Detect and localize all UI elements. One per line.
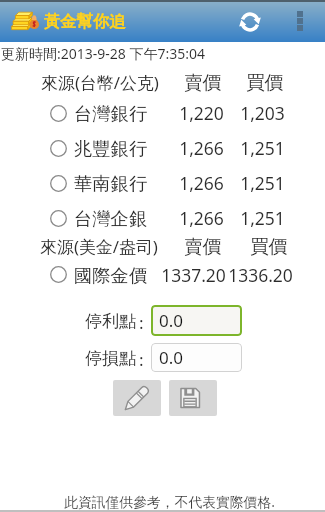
staticText: 1336.20 (228, 263, 293, 287)
button[interactable] (0, 131, 325, 166)
staticText: 1,266 (179, 171, 224, 195)
button[interactable]: Save (169, 380, 217, 416)
button[interactable] (0, 201, 325, 236)
staticText: 停損點 (85, 348, 137, 370)
staticText: 更新時間:2013-9-28 下午7:35:04 (1, 44, 206, 63)
button[interactable] (0, 257, 325, 292)
staticText: 1,251 (240, 136, 285, 160)
button[interactable]: 0.0 (151, 305, 242, 336)
staticText: 0.0 (159, 309, 184, 332)
staticText: 賣價 (184, 235, 221, 258)
staticText: 台灣企銀 (74, 207, 148, 230)
staticText: : (139, 348, 144, 371)
staticText: : (139, 311, 144, 334)
staticText: 1,251 (240, 206, 285, 230)
staticText: 來源(台幣/公克) (41, 71, 159, 94)
staticText: 賣價 (184, 71, 221, 94)
staticText: 國際金價 (74, 264, 148, 287)
button[interactable]: Refresh (236, 8, 264, 36)
staticText: 1,266 (179, 136, 224, 160)
staticText: 1337.20 (161, 263, 226, 287)
staticText: 1,220 (179, 101, 224, 125)
button[interactable]: Edit (113, 380, 161, 416)
staticText: 0.0 (159, 346, 184, 369)
button[interactable]: More options (290, 5, 309, 37)
staticText: 停利點 (85, 311, 137, 333)
staticText: 台灣銀行 (74, 102, 148, 125)
button[interactable] (0, 96, 325, 131)
button[interactable]: 0.0 (151, 343, 242, 372)
staticText: 1,266 (179, 206, 224, 230)
staticText: 來源(美金/盎司) (40, 235, 158, 258)
staticText: 1,203 (240, 101, 285, 125)
button[interactable] (0, 166, 325, 201)
staticText: 此資訊僅供參考，不代表實際價格. (64, 492, 275, 510)
staticText: 1,251 (240, 171, 285, 195)
staticText: 黃金幫你追 (44, 11, 126, 32)
staticText: 華南銀行 (74, 172, 148, 195)
staticText: 兆豐銀行 (74, 137, 148, 160)
staticText: 買價 (246, 71, 283, 94)
staticText: 買價 (250, 235, 287, 258)
